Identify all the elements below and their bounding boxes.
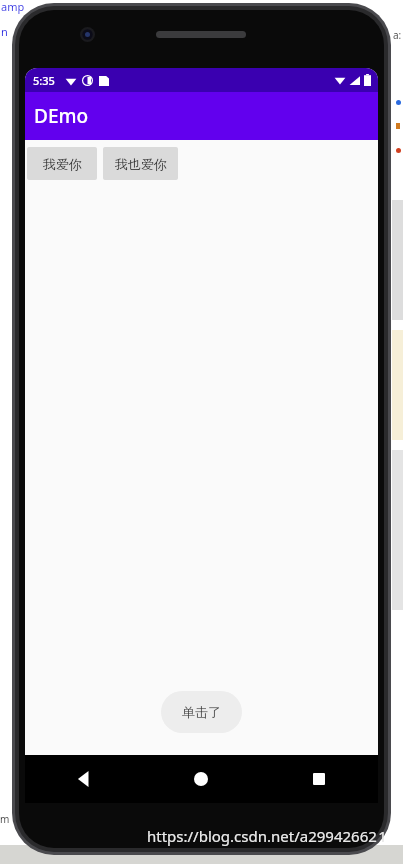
staticText: m bbox=[0, 812, 10, 826]
button[interactable]: 单击了 bbox=[161, 691, 242, 733]
staticText: amp bbox=[1, 0, 25, 14]
button[interactable]: 我也爱你 bbox=[103, 147, 178, 180]
staticText: 我也爱你 bbox=[115, 156, 167, 172]
button[interactable]: 我爱你 bbox=[27, 147, 97, 180]
button[interactable]: Back bbox=[25, 755, 142, 803]
staticText: 单击了 bbox=[182, 704, 221, 720]
staticText: n bbox=[1, 24, 8, 39]
button[interactable]: Recent apps bbox=[260, 755, 378, 803]
staticText: 5:35 bbox=[33, 73, 55, 88]
staticText: DEmo bbox=[34, 103, 89, 129]
staticText: 我爱你 bbox=[43, 156, 82, 172]
button[interactable]: Home bbox=[142, 755, 260, 803]
staticText: a: bbox=[393, 28, 402, 42]
staticText: https://blog.csdn.net/a29942662 1 bbox=[147, 826, 387, 846]
